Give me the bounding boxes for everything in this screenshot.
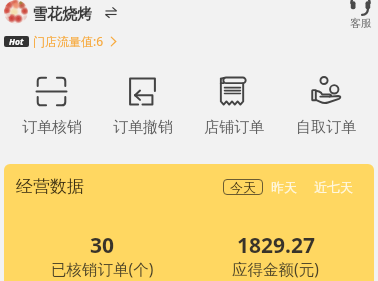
button[interactable]: 昨天	[271, 179, 297, 195]
staticText: 1829.27	[237, 231, 315, 260]
staticText: 店铺订单	[204, 118, 264, 137]
staticText: 应得金额(元)	[232, 258, 319, 279]
staticText: 近七天	[314, 179, 353, 195]
staticText: 自取订单	[296, 118, 356, 137]
button[interactable]: 雪花烧烤	[32, 5, 117, 24]
button[interactable]: Hot	[4, 33, 117, 49]
button[interactable]: 自取订单	[280, 76, 372, 137]
staticText: 已核销订单(个)	[51, 258, 154, 279]
staticText: 今天	[230, 179, 256, 195]
button[interactable]: 客服 customer service	[347, 0, 374, 33]
button[interactable]: 订单撤销	[97, 76, 188, 137]
staticText: 30	[90, 231, 115, 260]
button[interactable]: 今天	[223, 179, 263, 195]
staticText: 门店流量值:6	[33, 33, 104, 49]
staticText: 客服	[350, 16, 372, 30]
button[interactable]: 近七天	[314, 179, 353, 195]
staticText: 经营数据	[16, 176, 84, 197]
button[interactable]: 订单核销	[6, 76, 97, 137]
staticText: Hot	[9, 36, 24, 47]
staticText: 昨天	[271, 179, 297, 195]
staticText: 订单撤销	[113, 118, 173, 137]
staticText: 订单核销	[22, 118, 82, 137]
staticText: 雪花烧烤	[32, 5, 92, 24]
button[interactable]: Shop avatar	[4, 0, 28, 24]
button[interactable]: 店铺订单	[188, 76, 280, 137]
